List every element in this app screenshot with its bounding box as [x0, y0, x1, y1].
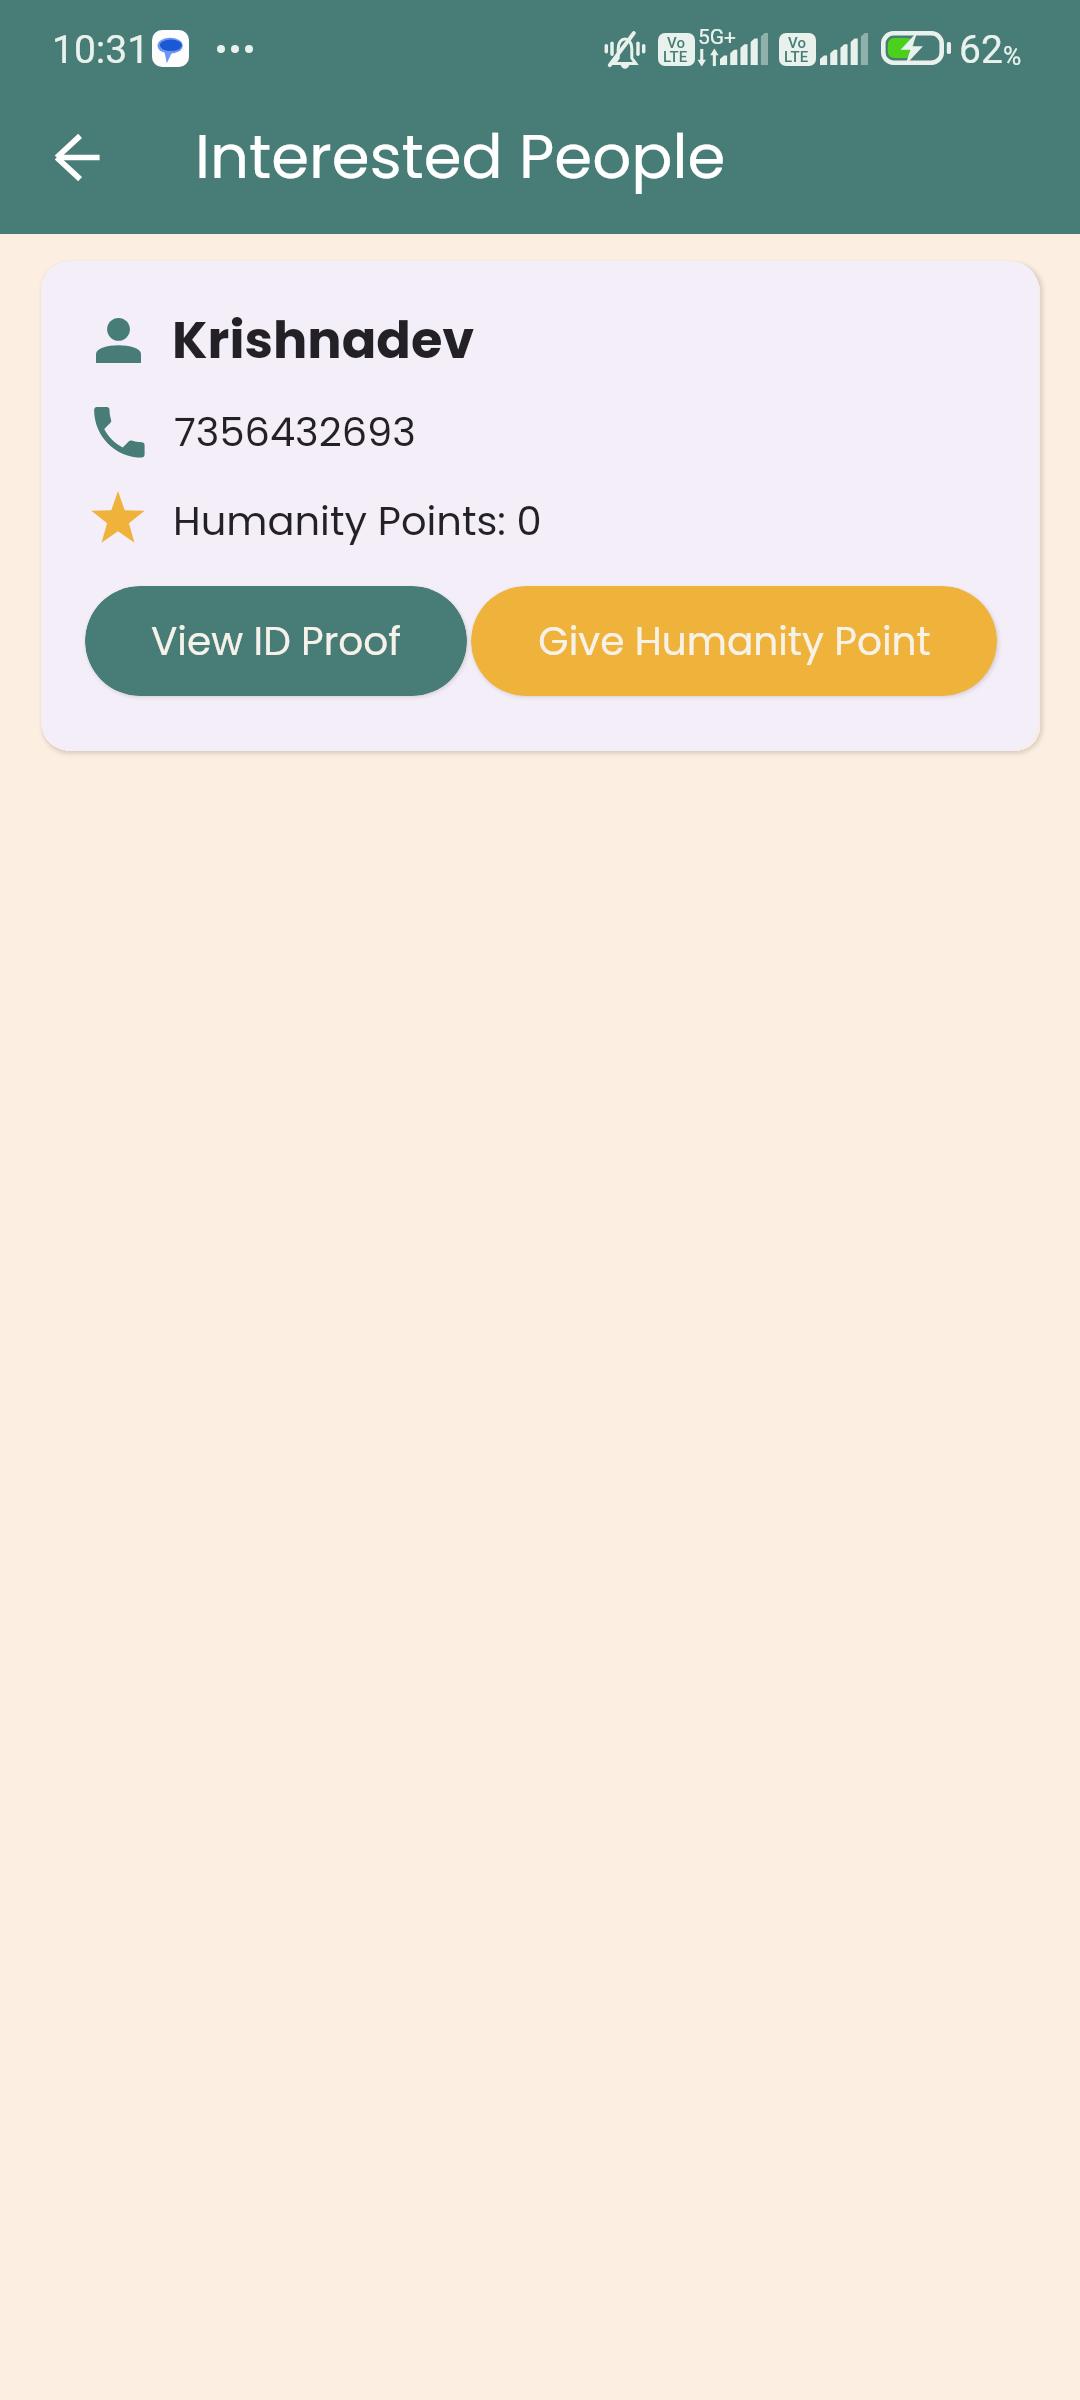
staticText: Interested People: [195, 114, 726, 199]
staticText: View ID Proof: [151, 614, 401, 669]
button[interactable]: View ID Proof: [85, 586, 467, 696]
staticText: Humanity Points: 0: [173, 493, 542, 549]
staticText: Give Humanity Point: [538, 614, 931, 669]
staticText: Krishnadev: [172, 304, 475, 375]
staticText: %: [1003, 42, 1022, 71]
staticText: LTE: [663, 48, 688, 66]
button[interactable]: Krishnadev: [41, 261, 1039, 751]
staticText: LTE: [784, 48, 809, 66]
staticText: 62: [959, 27, 1003, 73]
staticText: 7356432693: [174, 404, 416, 460]
button[interactable]: Give Humanity Point: [471, 586, 997, 696]
staticText: 10:31: [52, 27, 150, 73]
staticText: 5G+: [698, 25, 737, 50]
staticText: Vo: [788, 34, 806, 52]
staticText: Vo: [667, 34, 685, 52]
button[interactable]: Back: [22, 102, 132, 212]
